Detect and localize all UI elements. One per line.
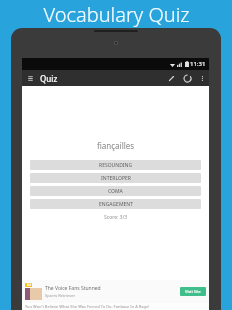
button[interactable]: Edit bbox=[163, 70, 179, 86]
staticText: ENGAGEMENT bbox=[99, 201, 133, 208]
button[interactable]: Visit Site bbox=[180, 287, 206, 296]
button[interactable]: RESOUNDING bbox=[30, 160, 201, 170]
staticText: COMA bbox=[108, 188, 123, 195]
staticText: fiançailles bbox=[97, 140, 135, 151]
staticText: Visit Site bbox=[185, 289, 201, 294]
button[interactable]: INTERLOPER bbox=[30, 173, 201, 183]
staticText: Vocabulary Quiz bbox=[43, 1, 190, 28]
button[interactable]: Open navigation drawer bbox=[22, 70, 38, 86]
button[interactable]: More options bbox=[195, 71, 209, 85]
button[interactable]: ENGAGEMENT bbox=[30, 199, 201, 209]
staticText: 11:31 bbox=[190, 60, 206, 68]
button[interactable]: COMA bbox=[30, 186, 201, 196]
staticText: Ad bbox=[27, 283, 31, 287]
staticText: Quiz bbox=[40, 73, 58, 84]
staticText: Sports Retriever bbox=[45, 293, 76, 298]
staticText: Score: 3/3 bbox=[104, 214, 128, 221]
staticText: The Voice Fans Stunned bbox=[45, 285, 101, 292]
button[interactable]: Refresh bbox=[179, 70, 195, 86]
staticText: RESOUNDING bbox=[99, 162, 133, 169]
staticText: You Won't Believe What She Was Forced To… bbox=[25, 304, 150, 309]
staticText: INTERLOPER bbox=[101, 175, 131, 182]
